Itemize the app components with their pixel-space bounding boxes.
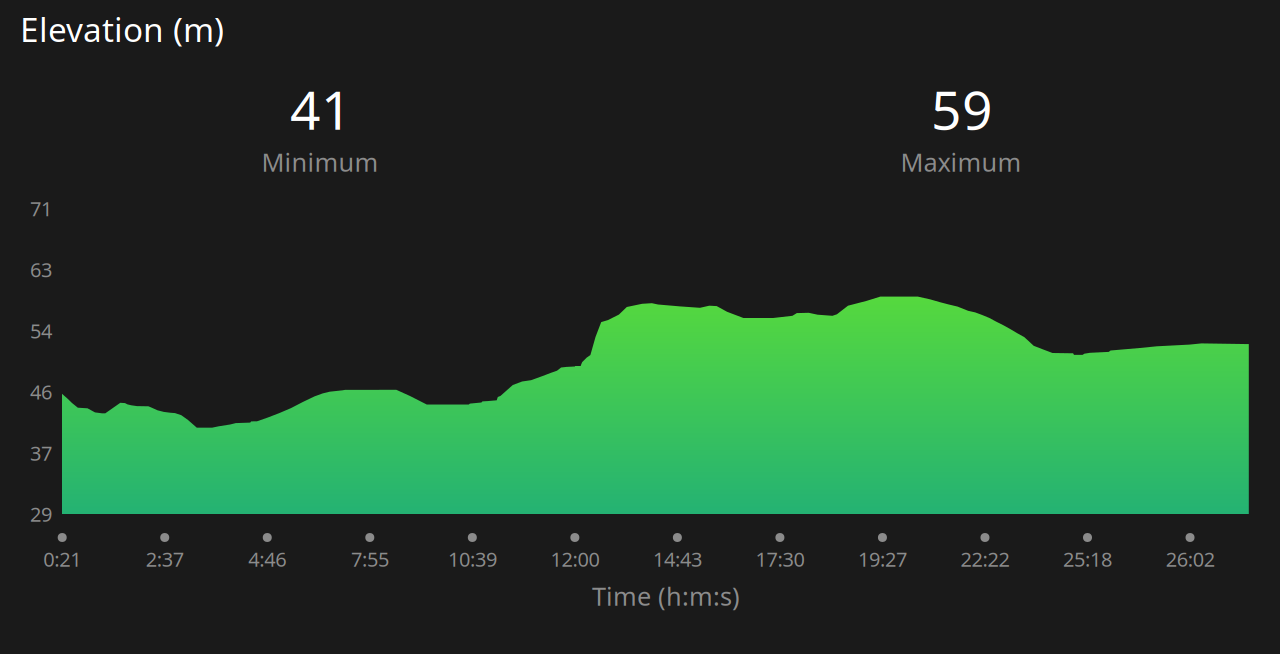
- staticText: 37: [30, 440, 52, 466]
- staticText: Minimum: [261, 145, 378, 179]
- staticText: Time (h:m:s): [592, 579, 740, 613]
- staticText: 0:21: [43, 546, 81, 572]
- staticText: 29: [30, 501, 52, 527]
- staticText: 71: [30, 195, 52, 222]
- staticText: Maximum: [900, 145, 1021, 179]
- staticText: 14:43: [653, 546, 702, 572]
- staticText: 46: [30, 378, 52, 405]
- staticText: Elevation (m): [20, 7, 224, 51]
- staticText: 19:27: [858, 546, 907, 572]
- staticText: 2:37: [146, 546, 184, 572]
- staticText: 41: [290, 74, 352, 144]
- staticText: 59: [931, 74, 993, 144]
- staticText: 7:55: [351, 546, 389, 572]
- staticText: 54: [30, 317, 52, 344]
- staticText: 4:46: [248, 546, 286, 572]
- staticText: 26:02: [1166, 546, 1215, 572]
- staticText: 22:22: [961, 546, 1010, 572]
- staticText: 25:18: [1063, 546, 1112, 572]
- staticText: 17:30: [755, 546, 804, 572]
- staticText: 63: [30, 256, 52, 283]
- staticText: 12:00: [550, 546, 599, 572]
- button[interactable]: Elevation chart, 41 to 59 meters: [62, 290, 1249, 514]
- staticText: 10:39: [448, 546, 497, 572]
